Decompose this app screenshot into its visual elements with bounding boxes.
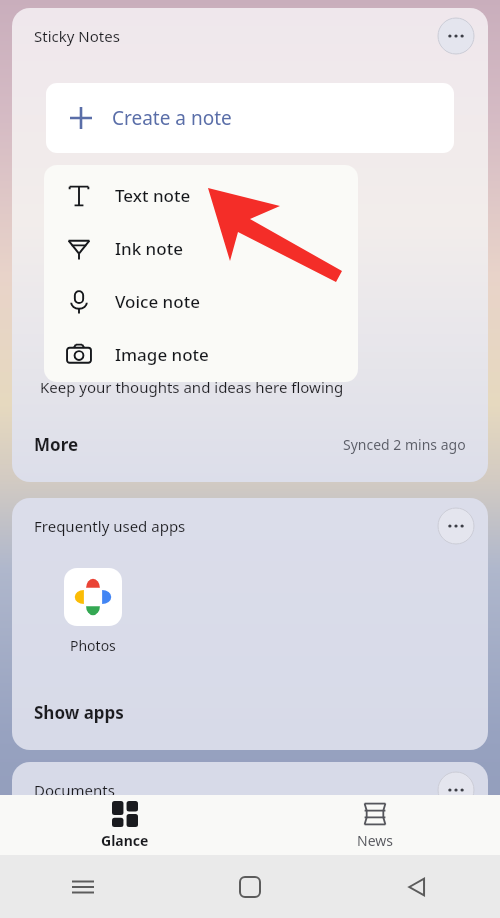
staticText: News [357,831,393,850]
button[interactable]: Home [166,855,333,918]
button[interactable]: Show apps [34,701,124,724]
button[interactable]: Image note [44,328,358,381]
staticText: Voice note [115,290,200,313]
staticText: Ink note [115,237,183,260]
staticText: Documents [34,780,115,800]
button[interactable]: Photos [64,568,122,655]
staticText: Image note [115,343,209,366]
staticText: Sticky Notes [34,26,120,46]
staticText: Synced 2 mins ago [343,435,466,454]
button[interactable]: More options [438,18,474,54]
button[interactable]: Voice note [44,275,358,328]
button[interactable]: Recent apps [0,855,166,918]
button[interactable]: More [34,433,79,456]
staticText: Keep your thoughts and ideas here flowin… [40,377,344,397]
button[interactable]: Create a note [46,83,454,153]
button[interactable]: Glance [0,795,250,855]
staticText: Photos [70,636,116,655]
button[interactable]: Back [333,855,500,918]
button[interactable]: News [250,795,500,855]
staticText: Glance [101,831,149,850]
staticText: Text note [115,184,191,207]
button[interactable]: More options [438,772,474,808]
staticText: Frequently used apps [34,516,186,536]
staticText: Create a note [112,105,232,131]
button[interactable]: Text note [44,169,358,222]
button[interactable]: More options [438,508,474,544]
button[interactable]: Ink note [44,222,358,275]
